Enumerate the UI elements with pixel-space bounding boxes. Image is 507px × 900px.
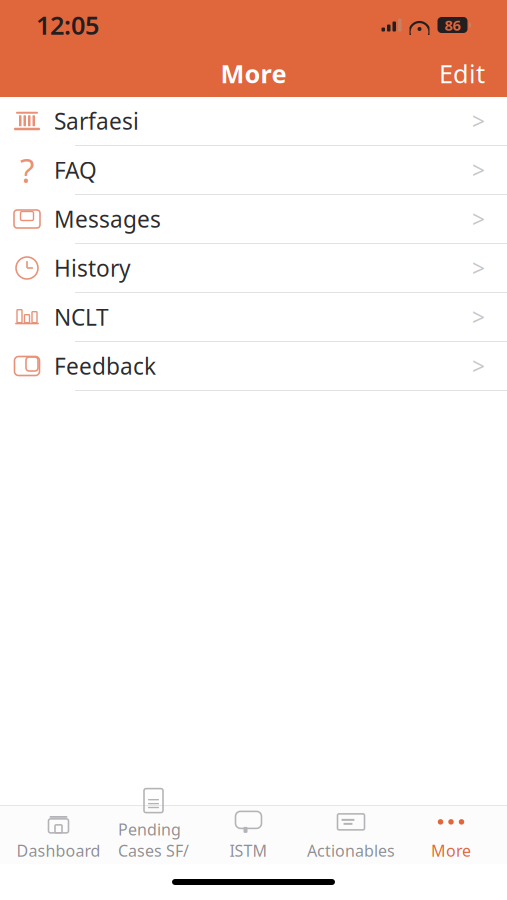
staticText: More xyxy=(220,57,286,90)
staticText: 86 xyxy=(444,15,460,35)
button[interactable]: Edit xyxy=(425,49,499,98)
button[interactable]: More xyxy=(406,808,496,862)
staticText: ? xyxy=(20,148,34,192)
staticText: More xyxy=(431,840,471,861)
staticText: Dashboard xyxy=(16,840,100,861)
staticText: NCLT xyxy=(54,302,109,332)
staticText: History xyxy=(54,253,131,283)
button[interactable]: ? xyxy=(0,146,507,195)
staticText: > xyxy=(472,351,485,381)
button[interactable]: NCLT xyxy=(0,293,507,342)
staticText: FAQ xyxy=(54,155,97,185)
staticText: Pending Cases SF/DRT xyxy=(118,819,189,882)
staticText: Sarfaesi xyxy=(54,106,139,136)
button[interactable]: Feedback xyxy=(0,342,507,391)
staticText: > xyxy=(472,302,485,332)
staticText: > xyxy=(472,106,485,136)
button[interactable]: Dashboard xyxy=(11,808,106,862)
button[interactable]: Sarfaesi xyxy=(0,97,507,146)
staticText: Edit xyxy=(439,57,485,90)
staticText: > xyxy=(472,204,485,234)
staticText: Feedback xyxy=(54,351,156,381)
staticText: ISTM xyxy=(229,840,267,861)
staticText: 12:05 xyxy=(36,8,99,42)
staticText: > xyxy=(472,253,485,283)
button[interactable]: Pending Cases SF/DRT xyxy=(106,808,201,862)
button[interactable]: History xyxy=(0,244,507,293)
button[interactable]: ISTM xyxy=(201,808,296,862)
staticText: > xyxy=(472,155,485,185)
staticText: Actionables xyxy=(307,840,395,861)
button[interactable]: Messages xyxy=(0,195,507,244)
staticText: Messages xyxy=(54,204,161,234)
button[interactable]: Actionables xyxy=(296,808,406,862)
